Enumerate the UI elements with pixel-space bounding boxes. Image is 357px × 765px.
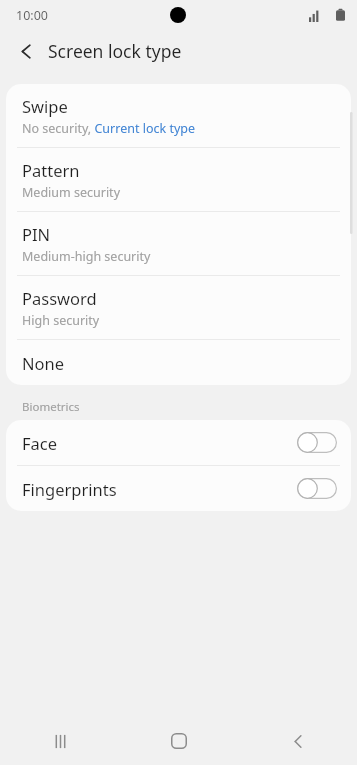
staticText: Biometrics [22, 399, 80, 415]
staticText: Face [22, 432, 58, 454]
button[interactable]: Face [6, 420, 351, 465]
staticText: Screen lock type [48, 39, 182, 63]
staticText: Pattern [22, 159, 80, 181]
button[interactable]: Pattern [6, 148, 351, 211]
button[interactable]: Back [9, 34, 43, 68]
staticText: Fingerprints [22, 478, 117, 500]
staticText: 10:00 [16, 7, 48, 24]
button[interactable]: Home [157, 719, 201, 763]
staticText: PIN [22, 223, 51, 245]
staticText: Swipe [22, 95, 68, 117]
staticText: Medium-high security [22, 248, 151, 265]
staticText: High security [22, 312, 100, 329]
button[interactable]: Back [276, 719, 320, 763]
staticText: None [22, 352, 65, 374]
button[interactable]: Recents [38, 719, 82, 763]
staticText: Medium security [22, 184, 121, 201]
staticText: No security, Current lock type [22, 120, 196, 137]
button[interactable]: Password [6, 276, 351, 339]
button[interactable]: Fingerprints [6, 466, 351, 511]
button[interactable]: None [6, 340, 351, 385]
staticText: Password [22, 287, 97, 309]
button[interactable]: Swipe [6, 84, 351, 147]
button[interactable]: PIN [6, 212, 351, 275]
